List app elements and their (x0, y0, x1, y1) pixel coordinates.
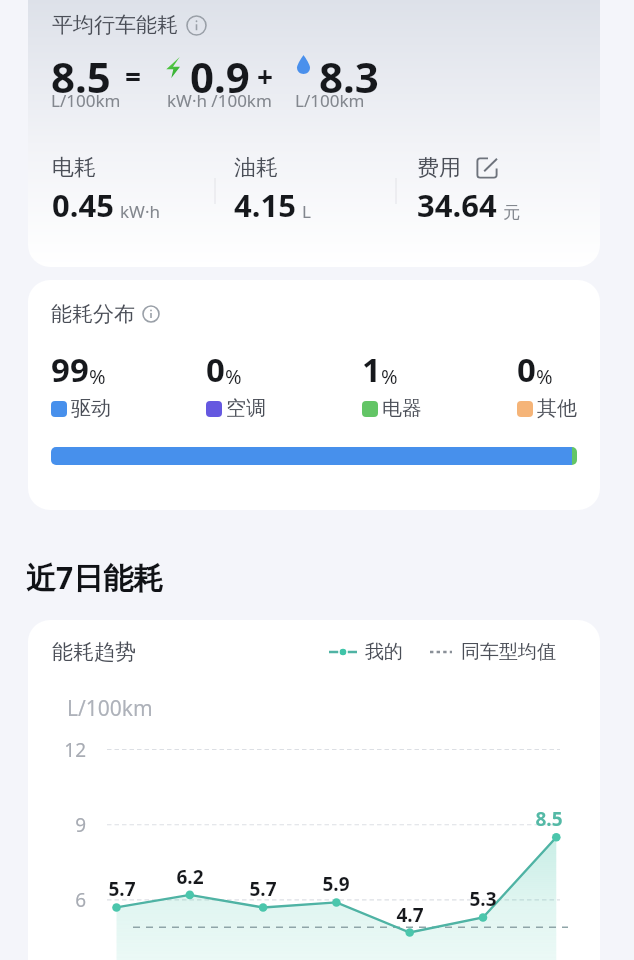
staticText: L/100km (67, 694, 153, 723)
staticText: 空调 (226, 396, 266, 421)
staticText: L/100km (51, 89, 121, 112)
staticText: 平均行车能耗 (52, 12, 178, 38)
staticText: 12 (28, 737, 86, 763)
staticText: L/100km (295, 89, 365, 112)
other: Info (142, 305, 160, 323)
staticText: 5.9 (311, 871, 361, 897)
staticText: 近7日能耗 (26, 557, 164, 598)
staticText: 其他 (537, 396, 577, 421)
staticText: % (89, 363, 106, 390)
other: Info (186, 15, 207, 36)
staticText: 6 (28, 887, 86, 913)
staticText: L (302, 200, 311, 223)
staticText: 8.3 (319, 48, 379, 105)
staticText: + (257, 57, 274, 95)
staticText: % (536, 363, 553, 390)
staticText: kW·h (120, 200, 160, 223)
staticText: = (125, 57, 142, 95)
staticText: 费用 (417, 154, 461, 182)
staticText: 5.3 (458, 886, 508, 912)
staticText: 0 (206, 347, 225, 392)
staticText: 6.2 (165, 864, 215, 890)
staticText: 0.9 (190, 48, 250, 105)
staticText: 元 (503, 202, 520, 223)
staticText: 同车型均值 (461, 640, 556, 664)
staticText: 4.7 (385, 902, 435, 928)
staticText: 8.5 (51, 48, 111, 105)
staticText: kW·h /100km (167, 89, 272, 112)
staticText: 1 (362, 347, 381, 392)
staticText: 5.7 (238, 876, 288, 902)
staticText: 9 (28, 812, 86, 838)
staticText: 驱动 (71, 396, 111, 421)
staticText: 电耗 (52, 154, 96, 182)
staticText: 8.5 (524, 806, 574, 832)
staticText: % (381, 363, 398, 390)
staticText: 能耗分布 (51, 301, 135, 327)
staticText: 5.7 (97, 876, 147, 902)
staticText: % (225, 363, 242, 390)
staticText: 0.45 (52, 184, 114, 226)
staticText: 油耗 (234, 154, 278, 182)
staticText: 电器 (382, 396, 422, 421)
staticText: 能耗趋势 (52, 639, 136, 665)
staticText: 99 (51, 347, 89, 392)
staticText: 4.15 (234, 184, 296, 226)
staticText: 我的 (365, 640, 403, 664)
button[interactable]: Edit (477, 158, 497, 178)
staticText: 0 (517, 347, 536, 392)
staticText: 34.64 (417, 184, 497, 226)
